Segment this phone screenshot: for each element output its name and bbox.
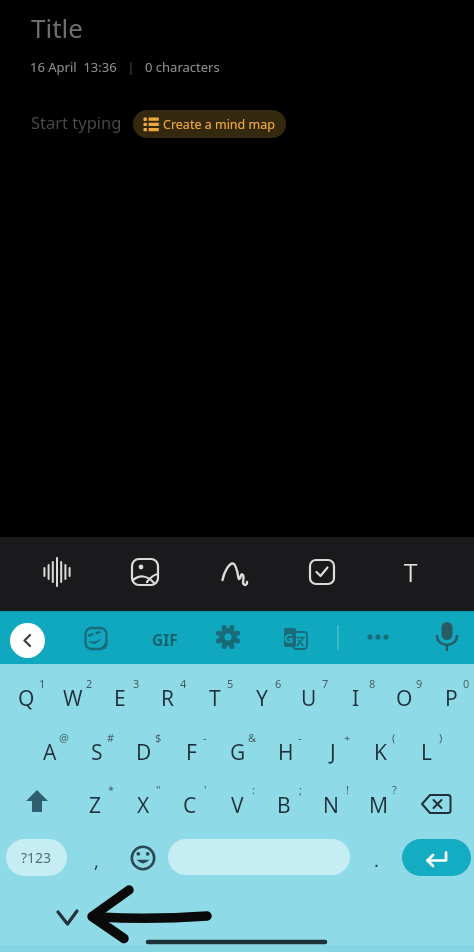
- staticText: !: [346, 782, 349, 796]
- staticText: -: [203, 730, 207, 744]
- button[interactable]: T: [387, 548, 435, 596]
- staticText: ': [204, 782, 207, 796]
- button[interactable]: E: [97, 676, 143, 720]
- button[interactable]: [402, 839, 471, 876]
- button[interactable]: O: [381, 676, 427, 720]
- button[interactable]: [168, 839, 350, 875]
- staticText: @: [59, 730, 69, 744]
- button[interactable]: J: [310, 730, 356, 774]
- button[interactable]: [209, 548, 257, 596]
- staticText: ,: [94, 849, 99, 874]
- staticText: Z: [89, 791, 102, 820]
- button[interactable]: Z: [72, 783, 118, 827]
- staticText: #: [107, 730, 115, 744]
- button[interactable]: ,: [76, 841, 116, 881]
- staticText: T: [209, 684, 221, 713]
- button[interactable]: W: [50, 676, 96, 720]
- button[interactable]: .: [356, 840, 396, 880]
- staticText: |: [117, 58, 145, 76]
- staticText: W: [63, 684, 83, 713]
- button[interactable]: G: [274, 615, 318, 659]
- button[interactable]: [121, 548, 169, 596]
- staticText: N: [323, 791, 339, 820]
- button[interactable]: S: [74, 730, 120, 774]
- button[interactable]: K: [357, 730, 403, 774]
- staticText: Start typing: [31, 111, 122, 133]
- button[interactable]: [412, 783, 460, 825]
- staticText: 16 April 13:36: [30, 58, 117, 76]
- staticText: A: [43, 738, 57, 767]
- staticText: G: [230, 738, 246, 767]
- staticText: C: [183, 791, 197, 820]
- button[interactable]: C: [167, 783, 213, 827]
- button[interactable]: Create a mind map: [133, 110, 286, 138]
- staticText: K: [374, 738, 387, 767]
- staticText: $: [155, 730, 162, 744]
- staticText: 5: [227, 676, 234, 690]
- staticText: F: [186, 738, 197, 767]
- button[interactable]: H: [263, 730, 309, 774]
- button[interactable]: T: [192, 676, 238, 720]
- staticText: ): [439, 730, 443, 744]
- button[interactable]: [425, 615, 469, 659]
- staticText: ;: [299, 782, 302, 796]
- button[interactable]: N: [308, 783, 354, 827]
- staticText: GIF: [152, 629, 178, 650]
- button[interactable]: GIF: [137, 617, 193, 661]
- staticText: O: [396, 684, 413, 713]
- button[interactable]: V: [214, 783, 260, 827]
- staticText: :: [252, 782, 255, 796]
- button[interactable]: P: [428, 676, 474, 720]
- staticText: H: [278, 738, 294, 767]
- button[interactable]: A: [27, 730, 73, 774]
- staticText: +: [344, 730, 351, 744]
- staticText: D: [136, 738, 152, 767]
- button[interactable]: [121, 836, 165, 880]
- staticText: ?123: [21, 848, 52, 867]
- button[interactable]: X: [120, 783, 166, 827]
- staticText: Y: [256, 684, 268, 713]
- staticText: L: [421, 738, 433, 767]
- staticText: Create a mind map: [163, 116, 275, 133]
- staticText: X: [137, 791, 150, 820]
- staticText: J: [330, 738, 336, 767]
- button[interactable]: [77, 615, 121, 659]
- staticText: 7: [322, 676, 329, 690]
- staticText: &: [248, 730, 257, 744]
- staticText: 4: [180, 676, 187, 690]
- staticText: V: [231, 791, 244, 820]
- staticText: ": [156, 782, 161, 796]
- button[interactable]: F: [168, 730, 214, 774]
- staticText: 1: [39, 676, 46, 690]
- button[interactable]: [356, 615, 400, 659]
- button[interactable]: L: [404, 730, 450, 774]
- staticText: U: [301, 684, 317, 713]
- staticText: B: [277, 791, 291, 820]
- button[interactable]: B: [261, 783, 307, 827]
- button[interactable]: R: [145, 676, 191, 720]
- staticText: R: [161, 684, 175, 713]
- staticText: T: [404, 555, 418, 589]
- button[interactable]: [298, 548, 346, 596]
- staticText: *: [108, 782, 115, 796]
- staticText: 9: [416, 676, 423, 690]
- button[interactable]: I: [333, 676, 379, 720]
- button[interactable]: ?123: [6, 839, 67, 876]
- staticText: 3: [133, 676, 140, 690]
- staticText: 2: [86, 676, 93, 690]
- staticText: 0: [463, 676, 470, 690]
- button[interactable]: Y: [239, 676, 285, 720]
- button[interactable]: [206, 615, 250, 659]
- staticText: I: [352, 684, 360, 713]
- button[interactable]: G: [215, 730, 261, 774]
- staticText: G: [284, 629, 294, 647]
- button[interactable]: [13, 781, 61, 823]
- staticText: S: [91, 738, 103, 767]
- button[interactable]: [33, 548, 81, 596]
- button[interactable]: D: [121, 730, 167, 774]
- button[interactable]: M: [356, 783, 402, 827]
- staticText: P: [445, 684, 458, 713]
- button[interactable]: [10, 623, 45, 658]
- button[interactable]: Q: [3, 676, 49, 720]
- button[interactable]: U: [286, 676, 332, 720]
